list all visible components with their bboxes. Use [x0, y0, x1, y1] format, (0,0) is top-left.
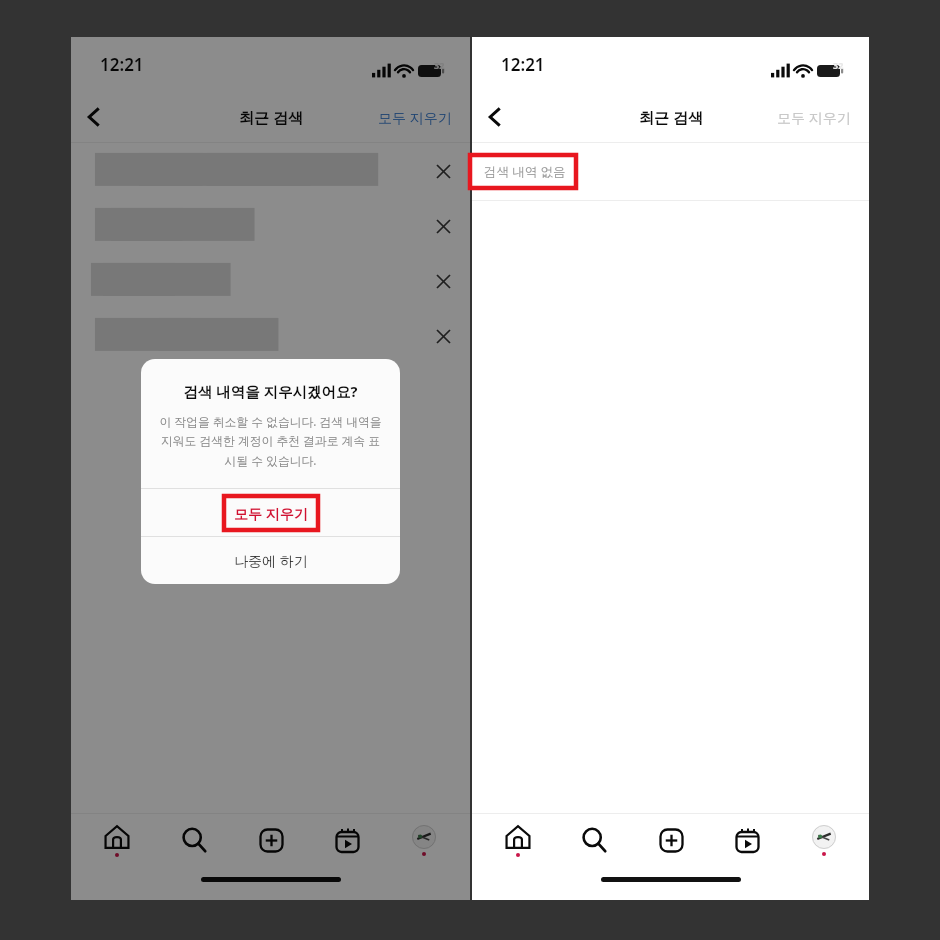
button[interactable]: Reels	[716, 814, 778, 866]
button[interactable]: Back	[472, 94, 518, 140]
staticText: 최근 검색	[639, 107, 703, 127]
button[interactable]: Reels	[316, 814, 378, 866]
button[interactable]: Create	[640, 814, 702, 866]
button[interactable]: Remove	[426, 154, 460, 188]
button[interactable]: Remove	[426, 264, 460, 298]
staticText: 검색 내역을 지우시겠어요?	[155, 381, 386, 401]
staticText: 32	[434, 59, 445, 71]
button[interactable]: 모두 지우기	[374, 102, 456, 133]
button[interactable]: Search	[563, 814, 625, 866]
button[interactable]: Create	[240, 814, 302, 866]
button[interactable]: 검색 내역 없음	[468, 153, 578, 190]
button[interactable]: Home	[487, 814, 549, 866]
button[interactable]: Profile	[393, 814, 455, 866]
button[interactable]: 나중에 하기	[141, 537, 400, 584]
button[interactable]: Remove	[426, 209, 460, 243]
staticText: 모두 지우기	[234, 504, 308, 523]
staticText: 32	[833, 59, 844, 71]
button[interactable]: Back	[71, 94, 117, 140]
button[interactable]: 모두 지우기	[141, 489, 400, 536]
staticText: 검색 내역 없음	[484, 163, 566, 180]
button[interactable]: Profile	[793, 814, 855, 866]
button[interactable]: 모두 지우기	[773, 102, 855, 133]
button[interactable]: Search	[163, 814, 225, 866]
button[interactable]: Remove	[426, 319, 460, 353]
staticText: 나중에 하기	[234, 551, 308, 570]
staticText: 12:21	[100, 53, 144, 76]
staticText: 이 작업을 취소할 수 없습니다. 검색 내역을 지워도 검색한 계정이 추천 …	[159, 413, 382, 468]
staticText: 모두 지우기	[777, 108, 851, 127]
staticText: 최근 검색	[239, 107, 303, 127]
staticText: 12:21	[501, 53, 545, 76]
staticText: 모두 지우기	[378, 108, 452, 127]
button[interactable]: Home	[86, 814, 148, 866]
